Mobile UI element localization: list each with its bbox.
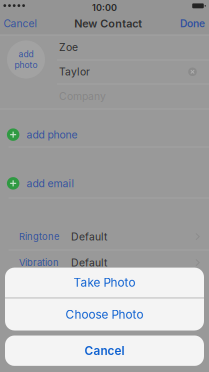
staticText: Done [180, 17, 205, 30]
button[interactable]: Take Photo [5, 268, 204, 298]
staticText: Take Photo [73, 275, 135, 290]
staticText: Zoe [59, 41, 78, 54]
button[interactable]: Ringtone [0, 224, 209, 250]
button[interactable]: Choose Photo [5, 298, 204, 330]
staticText: Default [71, 256, 107, 269]
button[interactable]: Vibration [0, 250, 209, 276]
staticText: Taylor [59, 65, 90, 78]
staticText: photo [14, 60, 37, 70]
button[interactable]: Done [163, 12, 205, 35]
staticText: Choose Photo [65, 307, 143, 322]
staticText: Ringtone [19, 231, 59, 242]
staticText: add phone [26, 128, 77, 141]
staticText: Company [59, 90, 106, 102]
button[interactable]: Cancel [0, 12, 46, 35]
staticText: Default [71, 230, 107, 243]
button[interactable]: add photo [7, 40, 45, 78]
button[interactable]: add email [0, 147, 209, 198]
staticText: Cancel [4, 17, 37, 30]
staticText: add email [26, 177, 74, 190]
staticText: Vibration [19, 257, 59, 268]
staticText: 10:00 [92, 2, 117, 13]
staticText: New Contact [74, 17, 142, 30]
button[interactable]: Cancel [5, 335, 204, 366]
staticText: Cancel [84, 344, 124, 358]
button[interactable]: add phone [0, 109, 209, 147]
staticText: add [18, 49, 33, 59]
